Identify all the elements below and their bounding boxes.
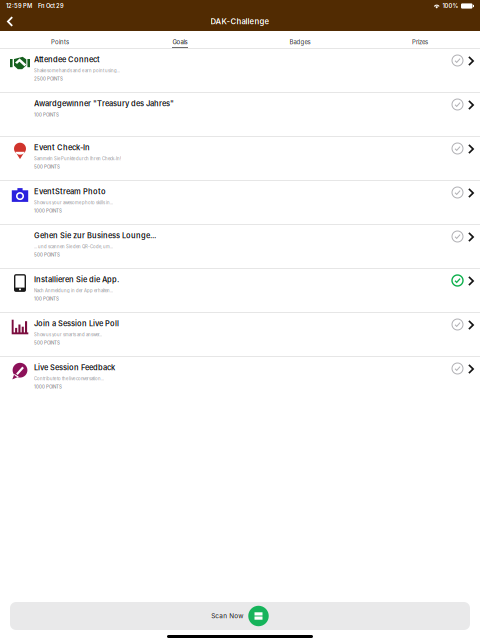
staticText: 1000 POINTS (34, 384, 62, 390)
button[interactable]: EventStream Photo (0, 181, 480, 225)
staticText: Show us your awesome photo skills in... (34, 200, 113, 205)
staticText: Live Session Feedback (34, 363, 115, 372)
staticText: 100 POINTS (34, 112, 59, 117)
staticText: Scan Now (211, 612, 243, 620)
staticText: Fri Oct 29 (38, 2, 64, 9)
staticText: Contribute to the live conversation... (34, 376, 104, 381)
staticText: 500 POINTS (34, 340, 60, 346)
staticText: Badges (289, 38, 310, 46)
staticText: ... und scannen Sie den QR-Code, um... (34, 244, 113, 249)
staticText: 100 POINTS (34, 296, 59, 302)
staticText: Show us your smarts and answer... (34, 332, 102, 337)
button[interactable]: Installieren Sie die App. (0, 269, 480, 313)
staticText: 12:59 PM (6, 2, 32, 9)
staticText: EventStream Photo (34, 187, 106, 196)
button[interactable]: Live Session Feedback (0, 357, 480, 401)
button[interactable]: Back (0, 12, 22, 31)
staticText: Join a Session Live Poll (34, 319, 119, 328)
button[interactable]: Badges (240, 30, 360, 48)
staticText: Installieren Sie die App. (34, 275, 119, 284)
staticText: Awardgewinner "Treasury des Jahres" (34, 99, 174, 108)
staticText: 500 POINTS (34, 252, 60, 258)
staticText: 100% (442, 2, 458, 9)
staticText: Goals (172, 38, 187, 46)
staticText: Event Check-In (34, 143, 90, 152)
button[interactable]: Awardgewinner "Treasury des Jahres" (0, 93, 480, 137)
staticText: 1000 POINTS (34, 208, 62, 214)
staticText: Points (51, 38, 69, 46)
button[interactable]: Goals (120, 30, 240, 48)
staticText: 2500 POINTS (34, 76, 63, 82)
button[interactable]: Join a Session Live Poll (0, 313, 480, 357)
staticText: Shake some hands and earn point using... (34, 68, 120, 73)
staticText: DAK-Challenge (210, 17, 269, 26)
button[interactable]: Event Check-In (0, 137, 480, 181)
button[interactable]: Points (0, 30, 120, 48)
button[interactable]: Prizes (360, 30, 480, 48)
button[interactable]: Attendee Connect (0, 49, 480, 93)
button[interactable]: Scan Now (10, 602, 470, 630)
button[interactable]: Gehen Sie zur Business Lounge... (0, 225, 480, 269)
staticText: Nach Anmeldung in der App erhalten... (34, 288, 113, 293)
staticText: Gehen Sie zur Business Lounge... (34, 231, 156, 240)
staticText: Sammeln Sie Punkte durch Ihren Check-In! (34, 156, 121, 161)
staticText: Prizes (412, 38, 428, 46)
staticText: 500 POINTS (34, 164, 60, 170)
staticText: Attendee Connect (34, 55, 100, 64)
